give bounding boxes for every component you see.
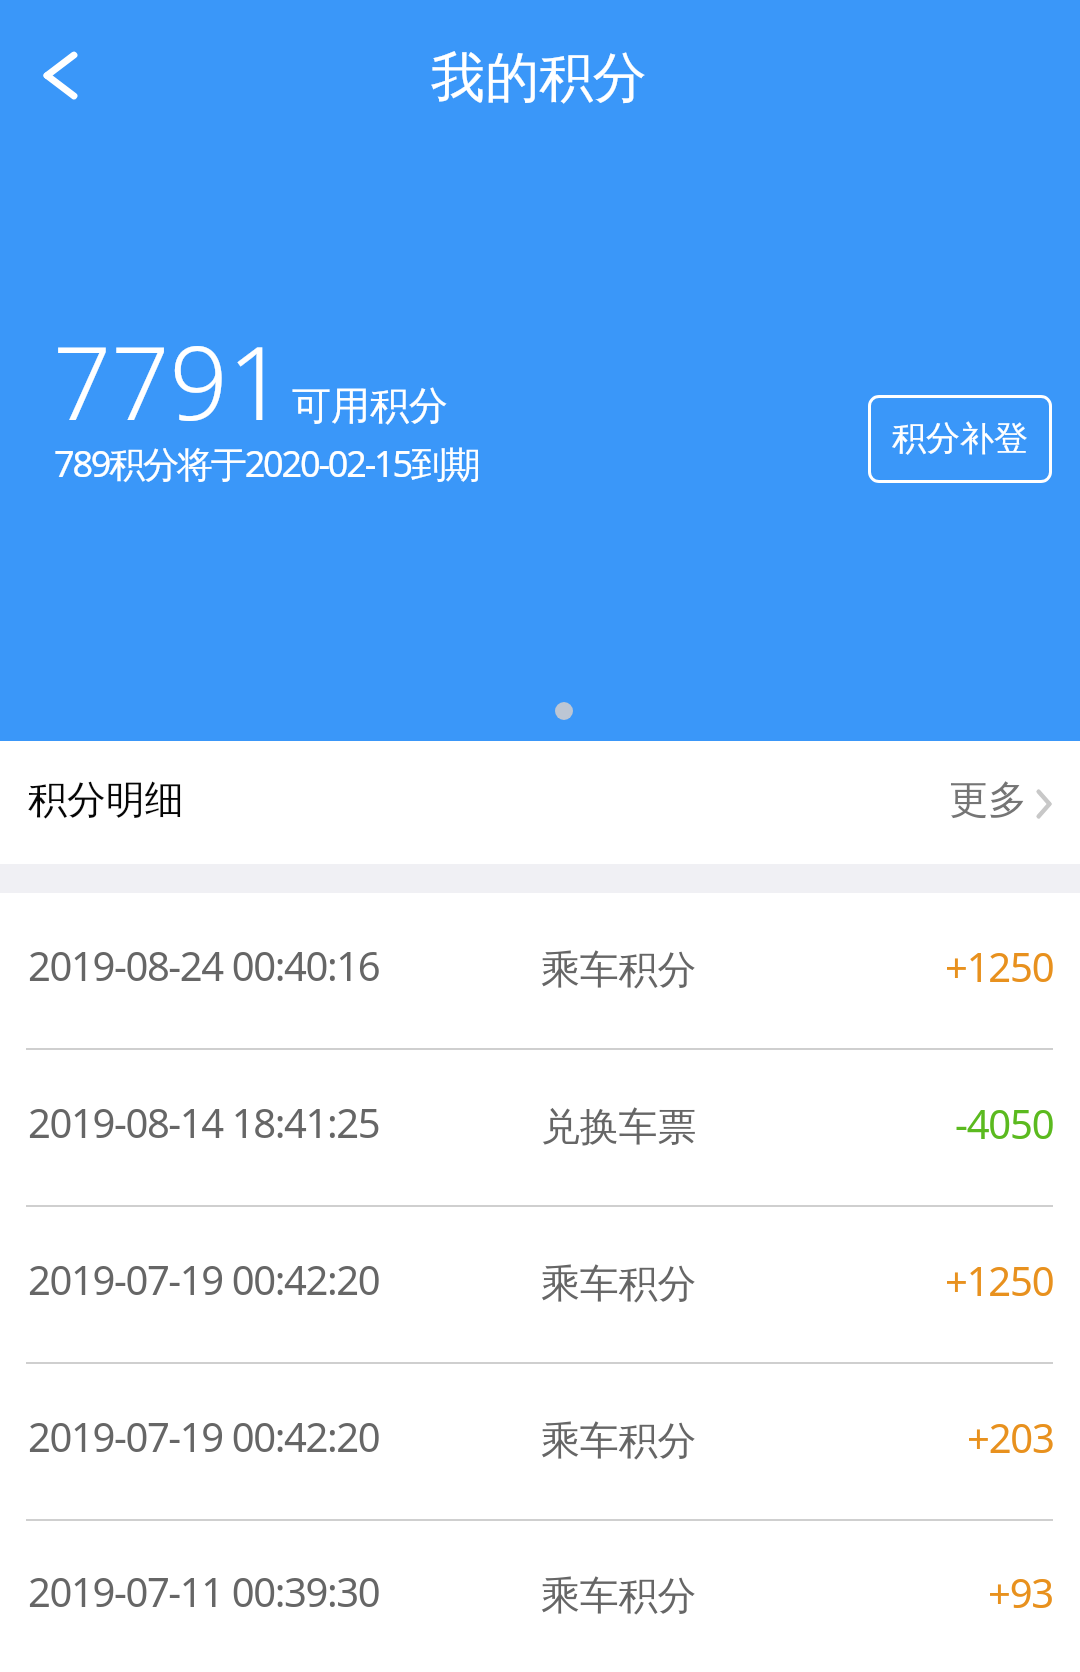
button[interactable]: 2019-07-11 00:39:30: [0, 1521, 1080, 1672]
button[interactable]: 积分补登: [868, 395, 1052, 483]
staticText: 积分明细: [28, 775, 184, 824]
staticText: 2019-07-11 00:39:30: [28, 1564, 380, 1618]
staticText: 乘车积分: [541, 1571, 697, 1620]
staticText: 7791: [53, 311, 286, 450]
staticText: 兑换车票: [541, 1102, 697, 1151]
button[interactable]: 2019-07-19 00:42:20: [0, 1364, 1080, 1521]
staticText: 乘车积分: [541, 1259, 697, 1308]
staticText: 乘车积分: [541, 1416, 697, 1465]
staticText: 2019-07-19 00:42:20: [28, 1252, 380, 1306]
staticText: -4050: [955, 1096, 1054, 1150]
staticText: 我的积分: [431, 44, 647, 112]
button[interactable]: 2019-08-24 00:40:16: [0, 893, 1080, 1050]
staticText: +203: [967, 1410, 1054, 1464]
button[interactable]: 2019-08-14 18:41:25: [0, 1050, 1080, 1207]
staticText: 乘车积分: [541, 945, 697, 994]
staticText: 2019-08-24 00:40:16: [28, 938, 380, 992]
staticText: +1250: [945, 939, 1054, 993]
staticText: +93: [988, 1565, 1054, 1619]
staticText: 可用积分: [292, 381, 448, 430]
button[interactable]: 积分明细: [0, 741, 1080, 864]
button[interactable]: 2019-07-19 00:42:20: [0, 1207, 1080, 1364]
staticText: +1250: [945, 1253, 1054, 1307]
staticText: 更多: [949, 775, 1027, 824]
button[interactable]: Back: [8, 23, 112, 127]
staticText: 2019-07-19 00:42:20: [28, 1409, 380, 1463]
staticText: 789积分将于2020-02-15到期: [54, 439, 479, 488]
staticText: 积分补登: [892, 417, 1028, 460]
staticText: 2019-08-14 18:41:25: [28, 1095, 380, 1149]
